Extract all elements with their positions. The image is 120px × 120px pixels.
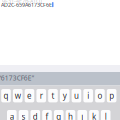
staticText: q: [3, 90, 8, 101]
staticText: w: [15, 90, 21, 101]
button[interactable]: j: [77, 110, 87, 120]
button[interactable]: u: [72, 89, 81, 102]
button[interactable]: i: [83, 89, 93, 102]
button[interactable]: r: [36, 89, 46, 102]
button[interactable]: e: [25, 89, 34, 102]
button[interactable]: f: [42, 110, 52, 120]
button[interactable]: d: [30, 110, 40, 120]
staticText: k: [92, 111, 96, 120]
staticText: 9F31-4E7B-A1C0: [2, 0, 42, 5]
staticText: i: [87, 90, 89, 101]
button[interactable]: t: [48, 89, 58, 102]
button[interactable]: k: [89, 110, 99, 120]
staticText: l: [105, 111, 107, 120]
staticText: h: [68, 111, 73, 120]
staticText: e: [27, 90, 32, 101]
button[interactable]: s: [19, 110, 28, 120]
staticText: AD2C-659A6173CF6E: [1, 1, 52, 8]
staticText: g: [56, 111, 61, 120]
staticText: p: [109, 90, 114, 101]
button[interactable]: o: [95, 89, 105, 102]
button[interactable]: q: [1, 89, 11, 102]
staticText: r: [40, 90, 43, 101]
button[interactable]: l: [101, 110, 110, 120]
staticText: o: [97, 90, 102, 101]
button[interactable]: a: [7, 110, 17, 120]
staticText: y: [63, 90, 67, 101]
staticText: u: [74, 90, 79, 101]
button[interactable]: p: [107, 89, 116, 102]
staticText: d: [33, 111, 38, 120]
button[interactable]: w: [13, 89, 22, 102]
button[interactable]: “6173CF6E”: [0, 71, 36, 85]
button[interactable]: h: [66, 110, 75, 120]
staticText: f: [45, 111, 48, 120]
button[interactable]: y: [60, 89, 69, 102]
staticText: s: [21, 111, 25, 120]
staticText: a: [10, 111, 14, 120]
staticText: “6173CF6E”: [0, 73, 34, 82]
staticText: t: [51, 90, 54, 101]
button[interactable]: g: [54, 110, 64, 120]
staticText: j: [81, 111, 83, 120]
